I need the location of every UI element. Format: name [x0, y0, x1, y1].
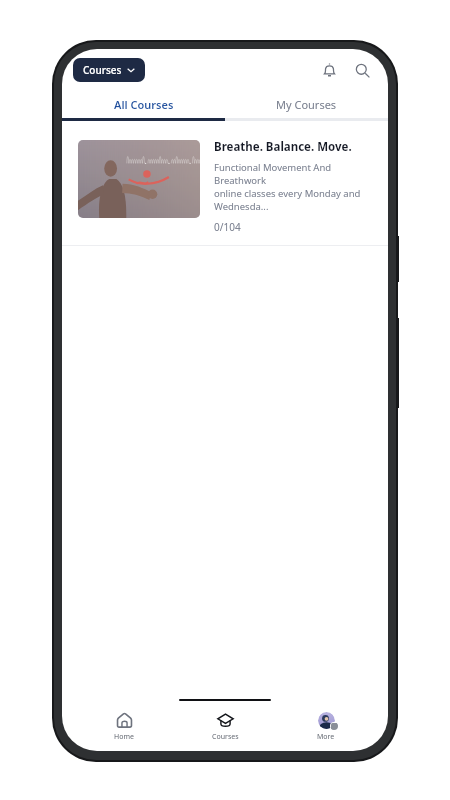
staticText: 0/104 [214, 220, 241, 234]
button[interactable]: Notifications [314, 55, 344, 85]
button[interactable]: More [287, 707, 365, 749]
staticText: Courses [212, 732, 239, 742]
button[interactable]: Courses [186, 707, 264, 749]
staticText: Home [114, 732, 134, 742]
staticText: Functional Movement And Breathwork onlin… [214, 161, 374, 213]
button[interactable]: All Courses [62, 91, 225, 118]
staticText: Courses [83, 63, 122, 77]
button[interactable]: Breathe. Balance. Move. [62, 130, 388, 245]
staticText: Breathe. Balance. Move. [214, 139, 352, 155]
button[interactable]: Courses [73, 58, 145, 82]
staticText: All Courses [114, 97, 174, 112]
button[interactable]: Search [347, 55, 377, 85]
button[interactable]: Home [85, 707, 163, 749]
staticText: More [317, 732, 335, 742]
staticText: My Courses [276, 97, 337, 112]
button[interactable]: My Courses [225, 91, 388, 118]
